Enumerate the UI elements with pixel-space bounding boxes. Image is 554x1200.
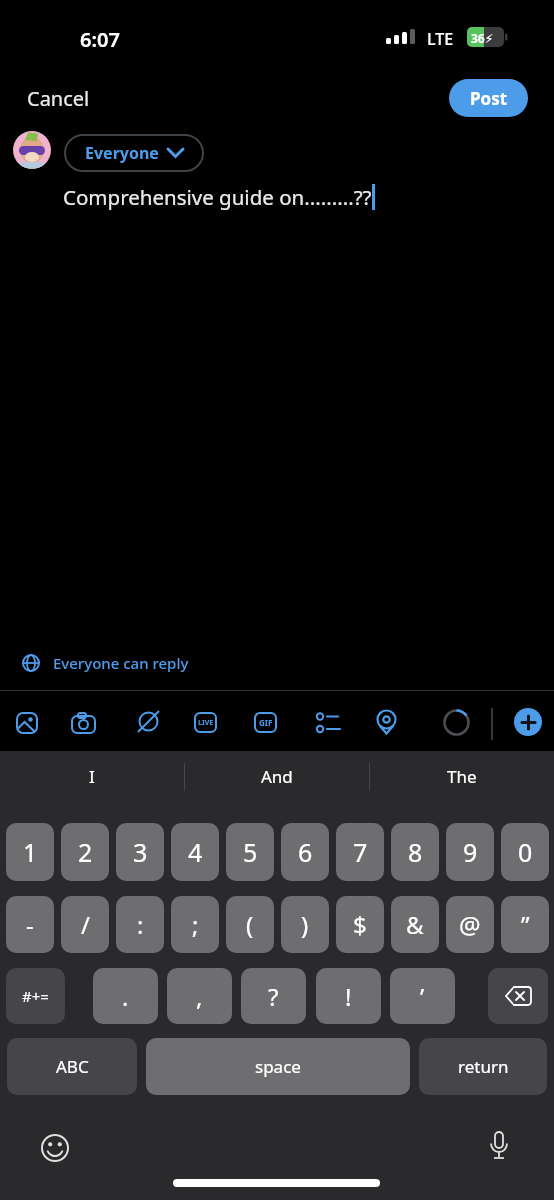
button[interactable]: #+= xyxy=(6,968,65,1024)
staticText: return xyxy=(458,1055,509,1078)
button[interactable]: - xyxy=(6,896,54,953)
button[interactable]: ’ xyxy=(390,968,455,1024)
staticText: 4 xyxy=(188,835,203,869)
staticText: : xyxy=(137,908,144,941)
staticText: ) xyxy=(301,908,309,941)
button[interactable]: Post xyxy=(449,79,528,117)
staticText: 8 xyxy=(408,835,423,869)
button[interactable]: GIF xyxy=(254,712,277,733)
button[interactable] xyxy=(71,712,96,734)
button[interactable]: 2 xyxy=(61,823,109,881)
button[interactable]: LIVE xyxy=(194,712,217,733)
staticText: ? xyxy=(268,980,279,1013)
staticText: ; xyxy=(192,908,199,941)
staticText: LTE xyxy=(427,28,454,50)
staticText: 3 xyxy=(133,835,148,869)
staticText: space xyxy=(255,1055,301,1078)
button[interactable]: 9 xyxy=(446,823,494,881)
staticText: - xyxy=(26,908,34,941)
button[interactable]: ” xyxy=(501,896,549,953)
button[interactable]: The xyxy=(370,751,554,802)
staticText: 2 xyxy=(78,835,93,869)
staticText: $ xyxy=(353,908,367,941)
staticText: I xyxy=(89,765,95,788)
button[interactable]: ? xyxy=(241,968,306,1024)
button[interactable] xyxy=(136,709,161,734)
button[interactable]: : xyxy=(116,896,164,953)
staticText: Post xyxy=(470,87,508,110)
staticText: LIVE xyxy=(198,718,214,728)
button[interactable]: 6 xyxy=(281,823,329,881)
staticText: And xyxy=(261,765,293,788)
button[interactable]: 3 xyxy=(116,823,164,881)
staticText: 7 xyxy=(353,835,368,869)
button[interactable]: 5 xyxy=(226,823,274,881)
button[interactable]: ; xyxy=(171,896,219,953)
staticText: . xyxy=(122,980,129,1013)
button[interactable]: / xyxy=(61,896,109,953)
button[interactable] xyxy=(514,708,542,736)
button[interactable]: 8 xyxy=(391,823,439,881)
staticText: 5 xyxy=(243,835,258,869)
button[interactable] xyxy=(16,712,38,734)
button[interactable]: Cancel xyxy=(27,85,90,112)
button[interactable]: space xyxy=(146,1038,410,1095)
button[interactable]: I xyxy=(0,751,184,802)
staticText: 6 xyxy=(298,835,313,869)
button[interactable]: 7 xyxy=(336,823,384,881)
button[interactable]: ! xyxy=(316,968,381,1024)
button[interactable]: Everyone can reply xyxy=(0,643,554,682)
staticText: / xyxy=(81,908,90,941)
staticText: 1 xyxy=(23,835,38,869)
button[interactable]: ) xyxy=(281,896,329,953)
staticText: ! xyxy=(345,980,352,1013)
button[interactable]: return xyxy=(419,1038,547,1095)
button[interactable]: And xyxy=(185,751,369,802)
staticText: 9 xyxy=(463,835,478,869)
button[interactable]: @ xyxy=(446,896,494,953)
staticText: ( xyxy=(246,908,254,941)
staticText: 6:07 xyxy=(80,26,120,53)
button[interactable]: 1 xyxy=(6,823,54,881)
staticText: Everyone xyxy=(85,142,159,164)
button[interactable] xyxy=(488,968,548,1024)
staticText: , xyxy=(196,980,203,1013)
staticText: ’ xyxy=(420,980,425,1013)
staticText: 36⚡ xyxy=(471,30,494,46)
staticText: 0 xyxy=(518,835,533,869)
button[interactable] xyxy=(40,1133,70,1163)
button[interactable] xyxy=(314,710,340,736)
button[interactable]: Everyone xyxy=(64,134,204,172)
staticText: Everyone can reply xyxy=(53,653,189,673)
staticText: Comprehensive guide on.........?? xyxy=(63,183,372,211)
button[interactable] xyxy=(375,709,398,735)
staticText: GIF xyxy=(259,717,273,728)
staticText: & xyxy=(406,908,424,941)
staticText: ABC xyxy=(56,1055,89,1078)
button[interactable] xyxy=(487,1131,511,1165)
button[interactable]: ( xyxy=(226,896,274,953)
staticText: The xyxy=(447,765,477,788)
button[interactable]: . xyxy=(93,968,158,1024)
button[interactable]: , xyxy=(167,968,232,1024)
staticText: @ xyxy=(459,908,481,941)
button[interactable]: 0 xyxy=(501,823,549,881)
staticText: ” xyxy=(521,908,530,941)
staticText: #+= xyxy=(22,986,49,1006)
button[interactable]: ABC xyxy=(7,1038,137,1095)
button[interactable]: 4 xyxy=(171,823,219,881)
button[interactable]: $ xyxy=(336,896,384,953)
button[interactable]: & xyxy=(391,896,439,953)
